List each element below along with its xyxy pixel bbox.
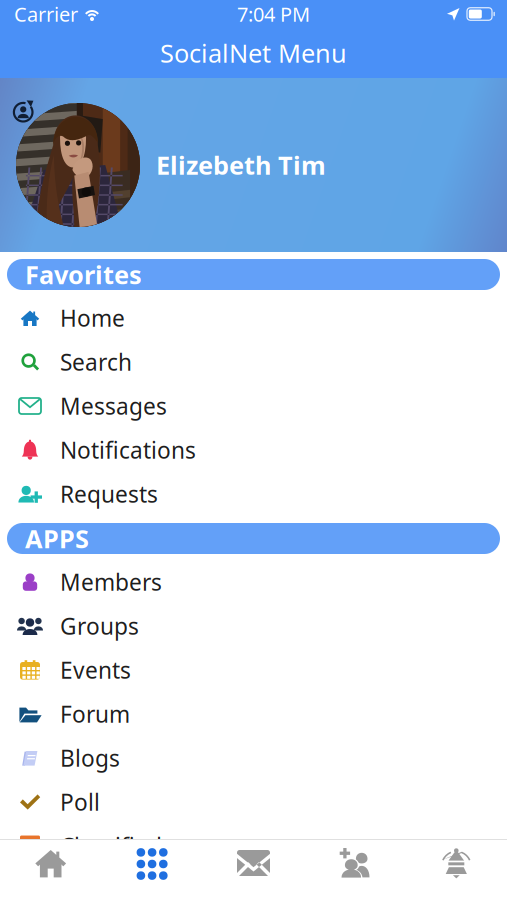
button[interactable]: Search	[0, 340, 507, 384]
staticText: Groups	[60, 611, 139, 641]
staticText: Requests	[60, 479, 158, 509]
button[interactable]: Poll	[0, 780, 507, 824]
staticText: Events	[60, 655, 131, 685]
staticText: 7:04 PM	[237, 1, 310, 27]
button[interactable]: Classifieds	[0, 824, 507, 868]
button[interactable]: Blogs	[0, 736, 507, 780]
staticText: Home	[60, 303, 125, 333]
button[interactable]: Friend Requests	[304, 840, 406, 900]
staticText: Classifieds	[60, 831, 173, 861]
staticText: Forum	[60, 699, 130, 729]
button[interactable]: Forum	[0, 692, 507, 736]
button[interactable]: Events	[0, 648, 507, 692]
button[interactable]: Notifications	[0, 428, 507, 472]
button[interactable]: Notifications	[406, 840, 507, 900]
button[interactable]: Home	[0, 296, 507, 340]
button[interactable]: Groups	[0, 604, 507, 648]
button[interactable]: Switch profile	[0, 78, 156, 252]
button[interactable]: Messages	[0, 384, 507, 428]
staticText: Carrier	[14, 1, 78, 27]
button[interactable]: Apps	[101, 840, 203, 900]
staticText: Messages	[60, 391, 167, 421]
staticText: Blogs	[60, 743, 120, 773]
staticText: SocialNet Menu	[160, 36, 347, 70]
button[interactable]: Requests	[0, 472, 507, 516]
button[interactable]: Home	[0, 840, 101, 900]
staticText: Members	[60, 567, 162, 597]
staticText: APPS	[25, 522, 89, 555]
staticText: Notifications	[60, 435, 196, 465]
staticText: Search	[60, 347, 132, 377]
button[interactable]: Members	[0, 560, 507, 604]
staticText: Elizebeth Tim	[156, 148, 326, 182]
button[interactable]: Messages	[203, 840, 304, 900]
staticText: Favorites	[25, 258, 142, 291]
staticText: Poll	[60, 787, 100, 817]
